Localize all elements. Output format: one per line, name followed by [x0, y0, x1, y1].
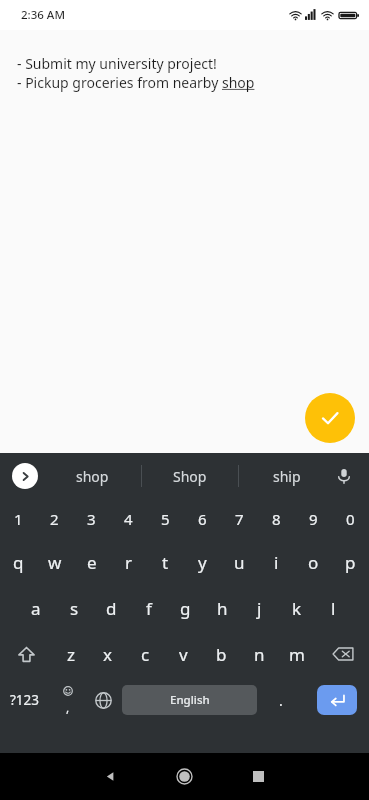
button[interactable]: f — [130, 585, 167, 631]
button[interactable]: s — [55, 585, 93, 631]
staticText: shop — [76, 467, 109, 486]
staticText: e — [87, 551, 97, 574]
staticText: h — [217, 597, 228, 620]
button[interactable]: Enter — [317, 685, 357, 715]
staticText: y — [198, 551, 207, 574]
staticText: o — [308, 551, 319, 574]
staticText: , — [66, 699, 70, 715]
button[interactable]: Home — [147, 753, 221, 800]
button[interactable]: . — [257, 677, 305, 723]
staticText: 4 — [124, 509, 133, 529]
button[interactable]: n — [240, 631, 278, 677]
button[interactable]: 4 — [110, 499, 147, 539]
staticText: 9 — [309, 509, 318, 529]
button[interactable]: a — [17, 585, 55, 631]
staticText: t — [162, 551, 169, 574]
button[interactable]: j — [241, 585, 278, 631]
button[interactable]: English — [122, 685, 257, 715]
button[interactable]: i — [258, 539, 295, 585]
button[interactable]: o — [295, 539, 332, 585]
staticText: a — [31, 597, 41, 620]
button[interactable]: 1 — [0, 499, 36, 539]
staticText: 2:36 AM — [21, 7, 65, 23]
staticText: p — [345, 551, 356, 574]
button[interactable]: Change language — [85, 677, 122, 723]
button[interactable]: 8 — [258, 499, 295, 539]
staticText: i — [274, 551, 279, 574]
staticText: 5 — [161, 509, 170, 529]
button[interactable]: shop — [44, 453, 141, 499]
button[interactable]: d — [93, 585, 130, 631]
staticText: j — [257, 597, 262, 620]
button[interactable]: 0 — [332, 499, 369, 539]
button[interactable]: 2 — [36, 499, 73, 539]
staticText: z — [67, 643, 75, 666]
staticText: ?123 — [10, 691, 40, 709]
staticText: q — [13, 551, 24, 574]
staticText: d — [106, 597, 117, 620]
staticText: n — [254, 643, 265, 666]
staticText: - Submit my university project! — [17, 54, 217, 73]
button[interactable]: y — [184, 539, 221, 585]
button[interactable]: Save note — [305, 393, 355, 443]
button[interactable]: Shift — [0, 631, 52, 677]
button[interactable]: Voice input — [329, 461, 359, 491]
button[interactable]: Shop — [142, 453, 238, 499]
staticText: 7 — [235, 509, 244, 529]
button[interactable]: z — [52, 631, 89, 677]
button[interactable]: 3 — [73, 499, 110, 539]
button[interactable]: t — [147, 539, 184, 585]
button[interactable]: p — [332, 539, 369, 585]
button[interactable]: 7 — [221, 499, 258, 539]
staticText: k — [292, 597, 302, 620]
staticText: . — [279, 691, 283, 710]
staticText: r — [125, 551, 133, 574]
staticText: m — [289, 643, 305, 666]
staticText: f — [146, 597, 152, 620]
staticText: 0 — [346, 509, 355, 529]
button[interactable]: ship — [239, 453, 335, 499]
button[interactable]: c — [126, 631, 164, 677]
button[interactable]: m — [278, 631, 316, 677]
button[interactable]: Back — [73, 753, 147, 800]
staticText: v — [179, 643, 188, 666]
staticText: English — [170, 692, 210, 708]
button[interactable]: q — [0, 539, 36, 585]
staticText: u — [234, 551, 245, 574]
button[interactable]: h — [204, 585, 241, 631]
staticText: x — [103, 643, 112, 666]
button[interactable]: k — [278, 585, 315, 631]
button[interactable]: Backspace — [316, 631, 369, 677]
button[interactable]: x — [89, 631, 126, 677]
button[interactable]: e — [73, 539, 110, 585]
staticText: - Pickup groceries from nearby shop — [17, 73, 255, 92]
button[interactable]: Emoji and comma — [50, 677, 85, 723]
button[interactable]: 5 — [147, 499, 184, 539]
button[interactable]: w — [36, 539, 73, 585]
staticText: ship — [273, 467, 301, 486]
staticText: c — [141, 643, 150, 666]
button[interactable]: ?123 — [0, 677, 50, 723]
button[interactable]: r — [110, 539, 147, 585]
staticText: g — [180, 597, 191, 620]
button[interactable]: b — [202, 631, 240, 677]
staticText: 1 — [14, 509, 23, 529]
staticText: 6 — [198, 509, 207, 529]
button[interactable]: v — [164, 631, 202, 677]
button[interactable]: More suggestions — [12, 463, 38, 489]
staticText: b — [216, 643, 227, 666]
button[interactable]: u — [221, 539, 258, 585]
button[interactable]: Recent apps — [221, 753, 295, 800]
button[interactable]: g — [167, 585, 204, 631]
staticText: l — [331, 597, 336, 620]
staticText: w — [48, 551, 62, 574]
staticText: 3 — [87, 509, 96, 529]
button[interactable]: l — [315, 585, 352, 631]
staticText: s — [70, 597, 79, 620]
staticText: 2 — [50, 509, 59, 529]
button[interactable]: 6 — [184, 499, 221, 539]
button[interactable]: 9 — [295, 499, 332, 539]
staticText: Shop — [173, 467, 207, 486]
staticText: 8 — [272, 509, 281, 529]
